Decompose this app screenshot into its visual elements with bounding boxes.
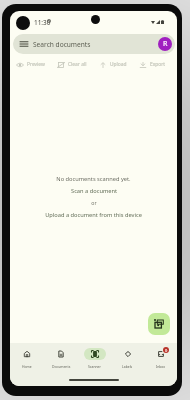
staticText: Export — [150, 61, 166, 68]
staticText: Scanner — [88, 364, 101, 369]
button[interactable]: Home — [10, 343, 44, 386]
staticText: 11:30 — [34, 18, 51, 27]
staticText: Home — [22, 364, 32, 369]
button[interactable]: Account — [158, 37, 172, 51]
button[interactable]: Scan a document — [71, 187, 117, 195]
staticText: Preview — [27, 61, 45, 68]
button[interactable]: Scanner — [78, 343, 111, 386]
staticText: R — [163, 39, 168, 49]
button[interactable]: Scan a document — [148, 313, 170, 335]
staticText: Labels — [122, 364, 133, 369]
staticText: or — [91, 199, 97, 206]
button[interactable]: Upload — [98, 59, 128, 70]
button[interactable]: Labels — [111, 343, 144, 386]
button[interactable]: Documents — [44, 343, 78, 386]
button[interactable]: Clear all — [56, 59, 88, 70]
staticText: Inbox — [156, 364, 166, 369]
button[interactable]: Export — [138, 59, 167, 70]
staticText: Clear all — [68, 61, 87, 68]
button[interactable]: Upload a document from this device — [45, 211, 142, 219]
staticText: Search documents — [33, 40, 91, 49]
staticText: Upload — [110, 61, 127, 68]
staticText: No documents scanned yet. — [56, 175, 131, 183]
staticText: Documents — [52, 364, 71, 369]
button[interactable]: Search documents — [13, 34, 175, 54]
button[interactable]: 0 — [144, 343, 177, 386]
button[interactable]: Preview — [15, 59, 46, 70]
staticText: 0 — [165, 348, 168, 353]
